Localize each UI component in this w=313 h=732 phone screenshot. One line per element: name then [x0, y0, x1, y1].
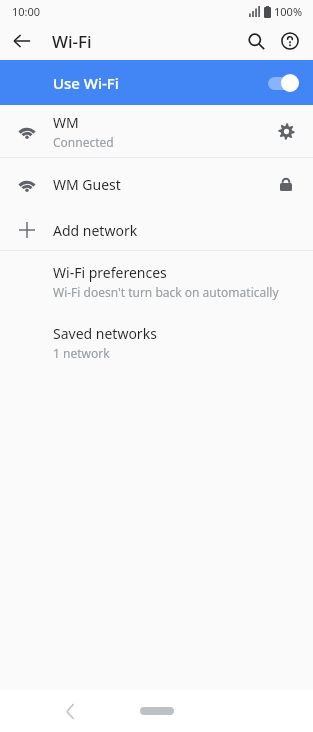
staticText: Wi-Fi preferences — [53, 263, 167, 282]
button[interactable]: Back — [4, 23, 40, 59]
button[interactable]: Use Wi-Fi — [0, 60, 313, 105]
button[interactable]: Home — [135, 700, 179, 722]
staticText: WM Guest — [53, 175, 121, 194]
staticText: WM — [53, 113, 79, 132]
staticText: Add network — [53, 221, 138, 240]
button[interactable]: WM Guest — [0, 158, 313, 210]
button[interactable]: Search — [239, 24, 273, 58]
staticText: Saved networks — [53, 324, 157, 343]
button[interactable]: Network settings — [269, 114, 303, 148]
staticText: Wi-Fi — [52, 30, 92, 53]
staticText: Wi-Fi doesn't turn back on automatically — [53, 284, 279, 300]
staticText: 10:00 — [12, 4, 41, 19]
button[interactable]: Help — [273, 24, 307, 58]
staticText: Connected — [53, 134, 114, 150]
button[interactable]: Back — [54, 695, 86, 727]
button[interactable]: Saved networks — [0, 312, 313, 373]
button[interactable]: WM — [0, 105, 313, 157]
staticText: 1 network — [53, 345, 110, 361]
button[interactable]: Add network — [0, 210, 313, 250]
staticText: 100% — [274, 4, 303, 19]
staticText: Use Wi-Fi — [53, 73, 119, 93]
button[interactable]: Wi-Fi preferences — [0, 251, 313, 312]
